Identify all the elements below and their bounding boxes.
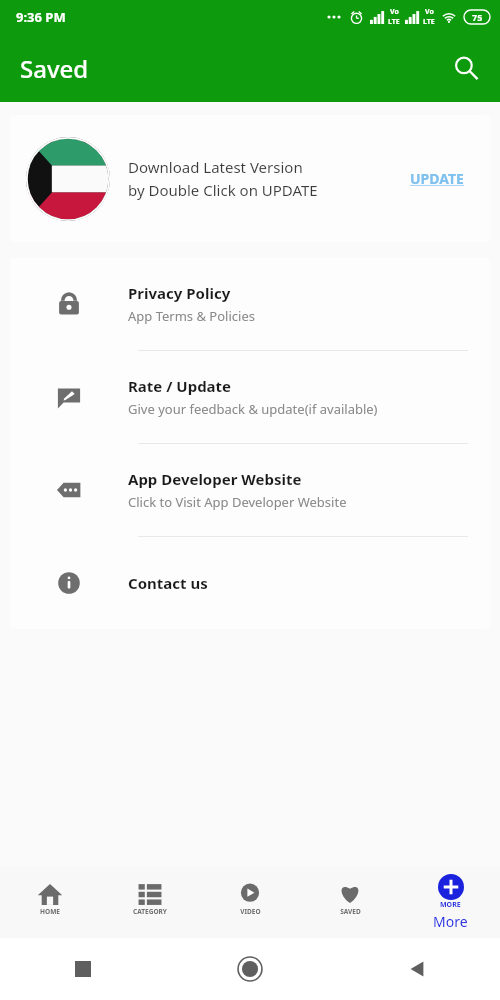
staticText: LTE (388, 17, 400, 27)
staticText: SAVED (340, 907, 361, 916)
button[interactable]: Back (404, 956, 430, 982)
staticText: Vo (425, 7, 434, 17)
button[interactable]: CATEGORY (100, 866, 200, 938)
staticText: Privacy Policy (128, 283, 231, 303)
staticText: Saved (20, 52, 89, 85)
button[interactable]: Contact us (10, 537, 490, 629)
button[interactable]: Rate / Update (10, 351, 490, 443)
button[interactable]: Privacy Policy (10, 258, 490, 350)
staticText: Vo (390, 7, 399, 17)
button[interactable]: Download Latest Version (10, 115, 490, 242)
staticText: Contact us (128, 573, 208, 593)
button[interactable]: HOME (0, 866, 100, 938)
staticText: HOME (40, 907, 60, 916)
button[interactable]: SAVED (300, 866, 400, 938)
staticText: Download Latest Version (128, 157, 303, 177)
staticText: 9:36 PM (16, 8, 66, 26)
button[interactable]: UPDATE (402, 163, 472, 194)
staticText: LTE (423, 17, 435, 27)
staticText: More (433, 912, 468, 931)
button[interactable]: Search (442, 44, 490, 92)
staticText: CATEGORY (133, 907, 167, 916)
staticText: Rate / Update (128, 376, 232, 396)
button[interactable]: MORE (400, 866, 500, 938)
staticText: MORE (440, 900, 461, 910)
staticText: by Double Click on UPDATE (128, 180, 318, 200)
staticText: VIDEO (240, 907, 261, 916)
staticText: App Terms & Policies (128, 307, 255, 325)
button[interactable]: Home (235, 954, 265, 984)
button[interactable]: App Developer Website (10, 444, 490, 536)
staticText: UPDATE (410, 169, 464, 188)
staticText: Click to Visit App Developer Website (128, 493, 347, 511)
staticText: App Developer Website (128, 469, 302, 489)
button[interactable]: VIDEO (200, 866, 300, 938)
staticText: Give your feedback & update(if available… (128, 400, 378, 418)
staticText: 75 (472, 11, 483, 23)
